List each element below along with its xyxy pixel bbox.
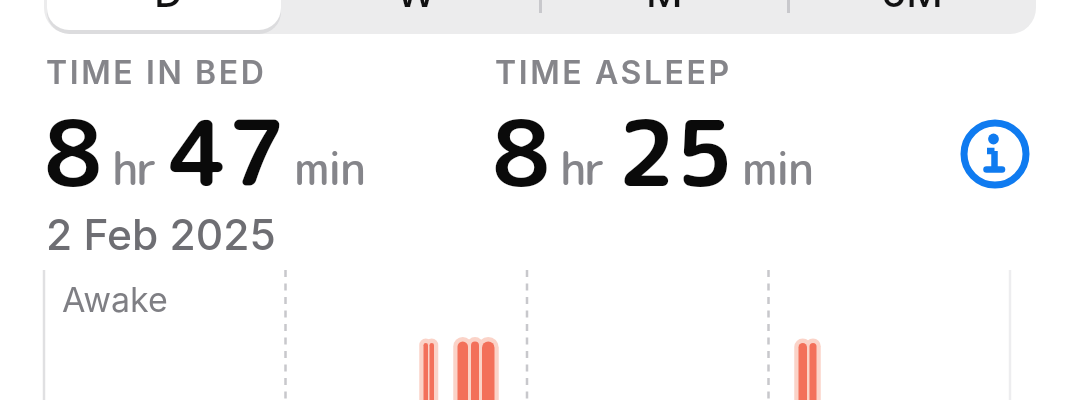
staticText: min [294, 137, 365, 200]
staticText: 2 Feb 2025 [46, 209, 276, 260]
staticText: hr [112, 137, 156, 200]
staticText: min [742, 137, 813, 200]
button[interactable]: W [292, 0, 540, 29]
staticText: hr [560, 137, 604, 200]
button[interactable]: D [44, 0, 292, 29]
staticText: 47 [169, 88, 286, 215]
button[interactable]: M [540, 0, 788, 29]
button[interactable]: 6M [788, 0, 1036, 29]
staticText: 6M [881, 0, 943, 16]
staticText: TIME ASLEEP [495, 53, 732, 92]
staticText: W [396, 0, 437, 16]
staticText: 25 [617, 88, 734, 215]
staticText: 8 [492, 88, 551, 215]
staticText: Awake [62, 279, 168, 320]
button[interactable] [958, 117, 1032, 191]
staticText: M [646, 0, 683, 16]
staticText: TIME IN BED [46, 53, 267, 92]
staticText: D [154, 0, 183, 16]
staticText: 8 [44, 88, 103, 215]
